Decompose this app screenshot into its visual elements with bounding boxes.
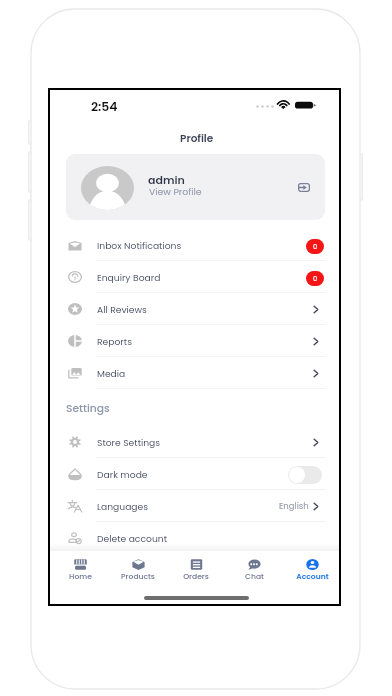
staticText: 2:54 [91, 98, 118, 115]
staticText: Orders [183, 571, 209, 582]
staticText: Delete account [97, 532, 322, 545]
button[interactable]: Logout [292, 175, 316, 199]
staticText: View Profile [149, 185, 202, 198]
button[interactable]: Account [283, 551, 341, 592]
staticText: Store Settings [97, 436, 316, 449]
staticText: Languages [97, 500, 284, 513]
staticText: Account [296, 571, 329, 582]
button[interactable]: Store Settings [50, 426, 339, 458]
staticText: English [279, 500, 309, 512]
button[interactable]: Products [109, 551, 167, 592]
button[interactable]: Media [50, 357, 339, 389]
button[interactable]: Chat [225, 551, 283, 592]
staticText: Profile [180, 131, 214, 146]
staticText: Chat [245, 571, 264, 582]
staticText: Enquiry Board [97, 271, 304, 284]
button[interactable]: Home [52, 551, 109, 592]
staticText: Inbox Notifications [97, 239, 304, 252]
staticText: All Reviews [97, 303, 316, 316]
staticText: 0 [313, 242, 318, 252]
button[interactable]: Orders [167, 551, 225, 592]
staticText: admin [148, 172, 185, 187]
button[interactable]: admin [66, 154, 325, 220]
button[interactable]: Reports [50, 325, 339, 357]
staticText: 0 [313, 274, 318, 284]
button[interactable]: Languages [50, 490, 339, 522]
staticText: Dark mode [97, 468, 288, 481]
staticText: Media [97, 367, 316, 380]
button[interactable]: All Reviews [50, 293, 339, 325]
staticText: Home [69, 571, 92, 582]
staticText: Products [121, 571, 155, 582]
button[interactable]: Enquiry Board [50, 261, 339, 293]
button[interactable]: Dark mode toggle [288, 466, 322, 484]
staticText: Reports [97, 335, 316, 348]
staticText: Settings [66, 401, 110, 416]
button[interactable]: Delete account [50, 522, 339, 554]
button[interactable]: Dark mode [50, 458, 339, 490]
button[interactable]: Inbox Notifications [50, 229, 339, 261]
